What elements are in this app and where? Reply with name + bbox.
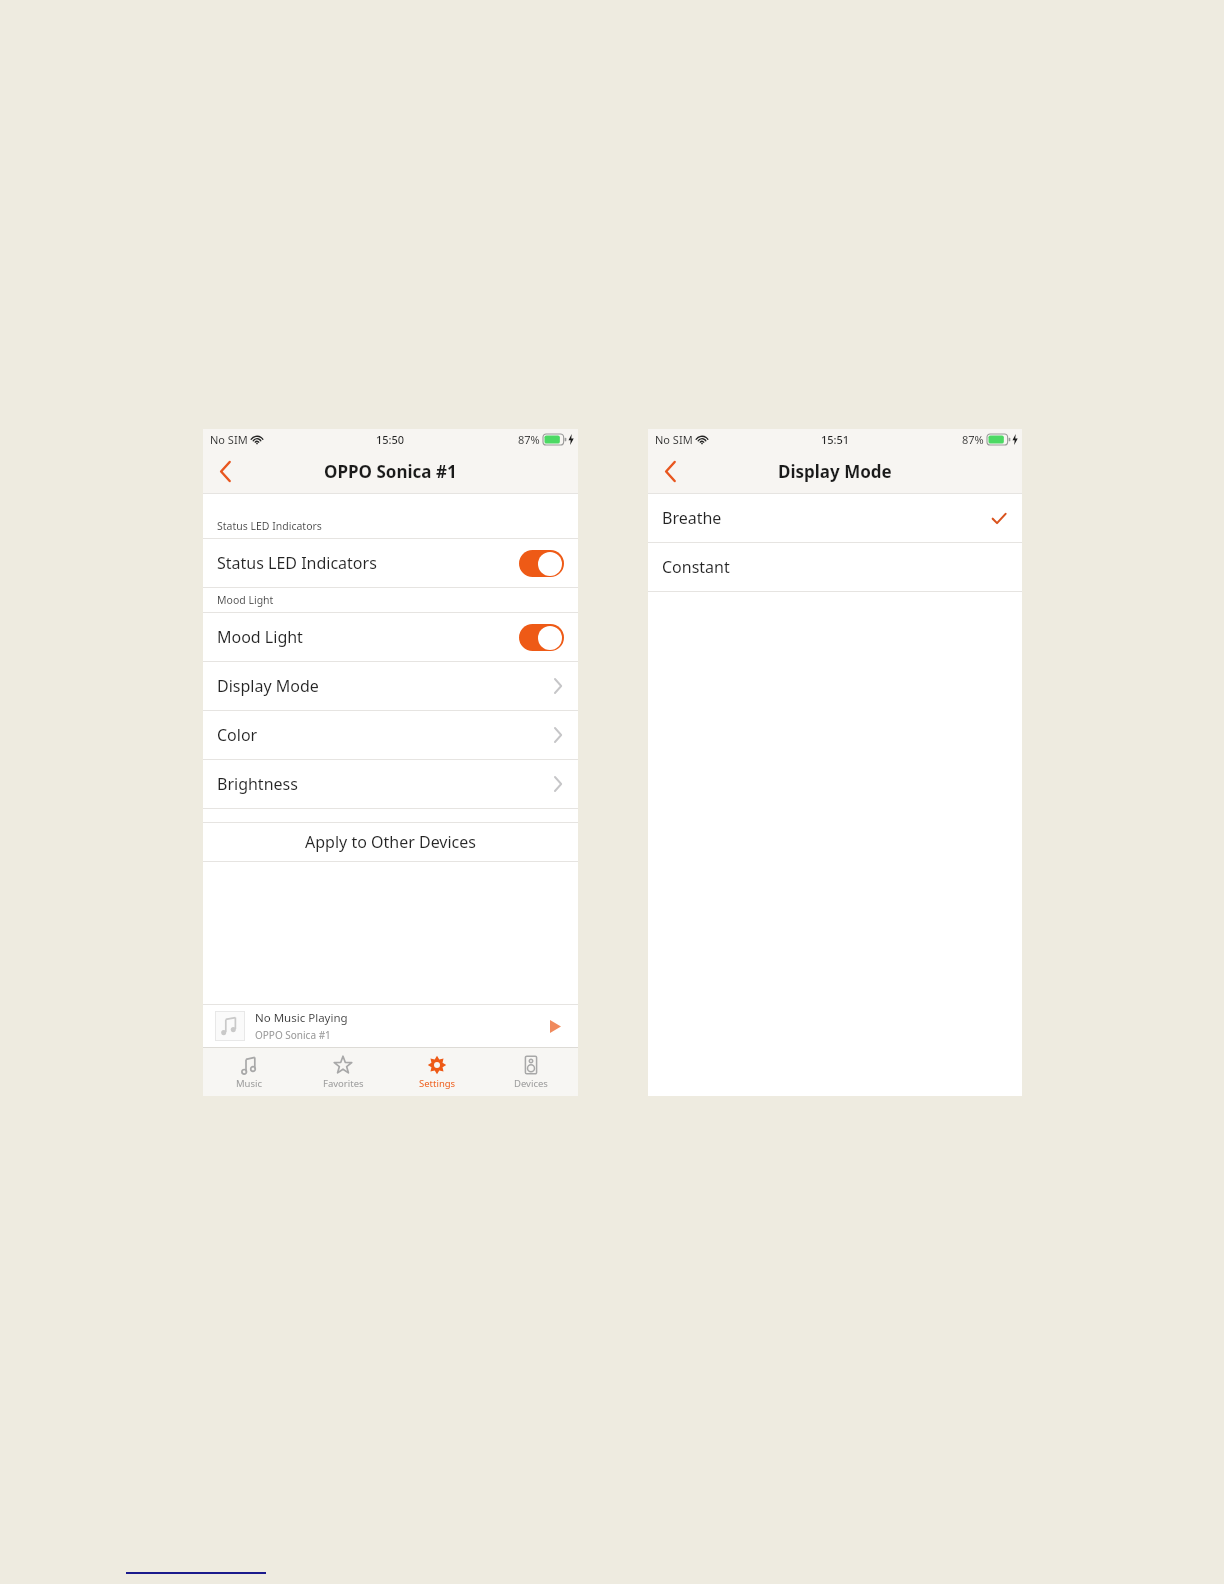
button[interactable]: Apply to Other Devices [203, 823, 578, 861]
button[interactable]: Favorites [296, 1048, 390, 1096]
staticText: Settings [419, 1077, 456, 1090]
staticText: 87% [518, 432, 540, 447]
button[interactable]: Back [203, 450, 247, 493]
staticText: No SIM [210, 432, 248, 447]
staticText: Display Mode [217, 675, 319, 697]
button[interactable]: Constant [648, 543, 1022, 591]
button[interactable]: Devices [484, 1048, 578, 1096]
button[interactable]: Mood Light [203, 613, 578, 661]
button[interactable]: Status LED Indicators [203, 539, 578, 587]
staticText: No SIM [655, 432, 693, 447]
button[interactable]: Breathe [648, 494, 1022, 542]
staticText: Mood Light [217, 593, 274, 607]
staticText: Music [236, 1077, 263, 1090]
staticText: Color [217, 724, 258, 746]
staticText: 15:51 [821, 432, 850, 447]
staticText: No Music Playing [255, 1010, 348, 1026]
staticText: Brightness [217, 773, 298, 795]
staticText: Devices [514, 1077, 548, 1090]
staticText: 15:50 [376, 432, 405, 447]
staticText: Display Mode [778, 460, 892, 483]
button[interactable]: Back [648, 450, 692, 493]
staticText: Constant [662, 556, 730, 578]
button[interactable]: Music [203, 1048, 296, 1096]
button[interactable]: Play [538, 1009, 572, 1043]
button[interactable]: Brightness [203, 760, 578, 808]
button[interactable]: Settings [390, 1048, 484, 1096]
staticText: Status LED Indicators [217, 519, 322, 533]
button[interactable]: Display Mode [203, 662, 578, 710]
staticText: OPPO Sonica #1 [255, 1028, 331, 1042]
staticText: 87% [962, 432, 984, 447]
staticText: Status LED Indicators [217, 552, 377, 574]
staticText: Favorites [323, 1077, 364, 1090]
staticText: Apply to Other Devices [305, 831, 476, 853]
button[interactable]: No Music Playing [203, 1005, 578, 1047]
button[interactable]: Color [203, 711, 578, 759]
staticText: Mood Light [217, 626, 303, 648]
staticText: OPPO Sonica #1 [324, 460, 457, 483]
staticText: Breathe [662, 507, 722, 529]
